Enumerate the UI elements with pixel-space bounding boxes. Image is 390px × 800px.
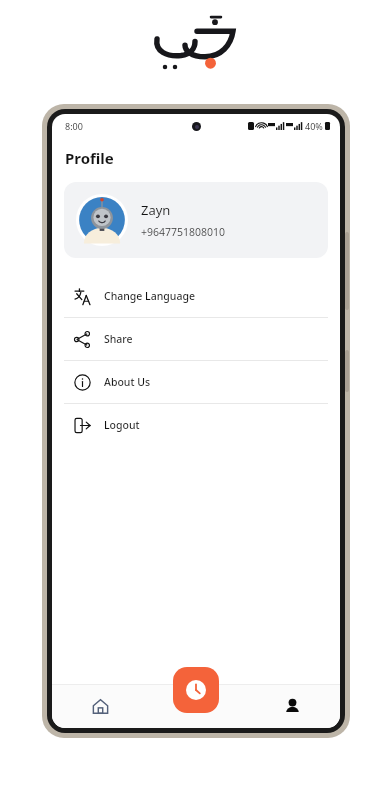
button[interactable]: About Us xyxy=(52,361,340,403)
button[interactable]: Share xyxy=(52,318,340,360)
staticText: Profile xyxy=(65,148,114,168)
staticText: Share xyxy=(104,332,133,346)
button[interactable]: History xyxy=(173,667,219,713)
staticText: Change Language xyxy=(104,289,195,303)
button[interactable]: Logout xyxy=(52,404,340,446)
staticText: +9647751808010 xyxy=(141,225,226,239)
staticText: 8:00 xyxy=(65,120,83,132)
staticText: Logout xyxy=(104,418,140,432)
staticText: 40% xyxy=(305,120,323,132)
button[interactable]: Change Language xyxy=(52,275,340,317)
button[interactable]: Profile xyxy=(244,684,340,728)
button[interactable]: Zayn xyxy=(64,182,328,258)
button[interactable]: Home xyxy=(52,684,148,728)
staticText: Zayn xyxy=(141,201,171,219)
staticText: About Us xyxy=(104,375,150,389)
